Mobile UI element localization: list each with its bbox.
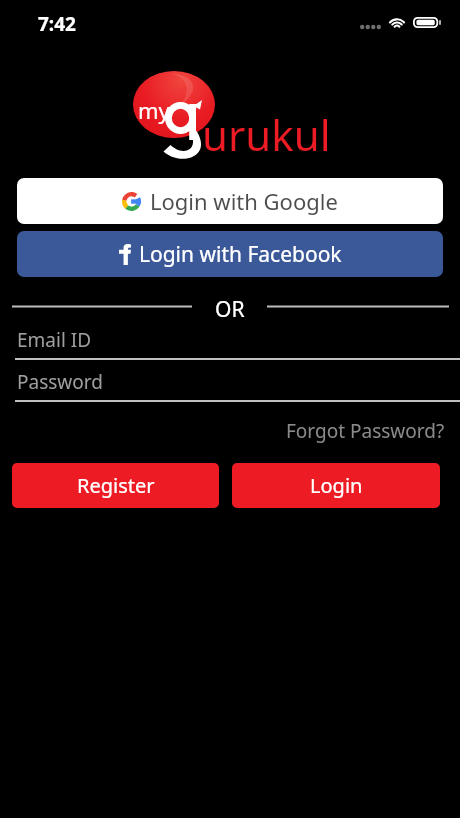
staticText: Password: [17, 369, 103, 395]
staticText: Login with Google: [150, 186, 338, 216]
button[interactable]: Register: [12, 463, 219, 508]
button[interactable]: Login with Google: [17, 178, 443, 224]
staticText: Register: [77, 472, 155, 499]
staticText: 7:42: [38, 11, 76, 37]
button[interactable]: Email ID: [15, 322, 460, 358]
staticText: Login with Facebook: [139, 240, 342, 269]
button[interactable]: Login: [232, 463, 440, 508]
staticText: my: [138, 95, 170, 125]
button[interactable]: Login with Facebook: [17, 231, 443, 277]
staticText: Email ID: [17, 327, 92, 353]
button[interactable]: Password: [15, 364, 460, 400]
button[interactable]: Forgot Password?: [286, 418, 445, 444]
staticText: OR: [215, 295, 245, 323]
staticText: urukul: [202, 106, 331, 163]
staticText: Login: [310, 472, 363, 499]
